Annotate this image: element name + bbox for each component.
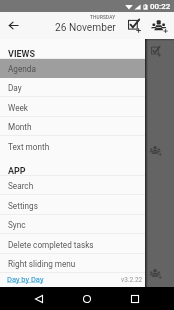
button[interactable]: New task [123,14,147,38]
button[interactable]: Search [0,176,145,195]
button[interactable]: Right sliding menu [0,254,145,273]
button[interactable]: Day by Day [7,275,44,284]
staticText: 26 November [55,22,116,34]
button[interactable]: Back [2,14,24,36]
staticText: Month [8,122,32,132]
staticText: 00:22 [150,2,171,11]
staticText: APP [8,166,26,177]
staticText: THURSDAY [90,15,116,21]
button[interactable]: Home [75,287,99,310]
staticText: Agenda [8,64,36,74]
staticText: Search [8,181,34,191]
button[interactable]: Add people [147,14,173,38]
button[interactable]: Back [27,287,51,310]
button[interactable]: Month [0,117,145,136]
button[interactable]: Sync [0,215,145,234]
button[interactable]: Week [0,98,145,117]
button[interactable]: Delete completed tasks [0,235,145,254]
button[interactable]: Recents [123,287,147,310]
staticText: VIEWS [8,49,35,60]
button[interactable]: Day [0,78,145,97]
staticText: Settings [8,201,38,211]
button[interactable]: Text month [0,137,145,156]
staticText: Week [8,103,28,113]
staticText: Right sliding menu [8,259,76,269]
button[interactable]: Settings [0,196,145,215]
staticText: v3.2.22 [121,276,143,284]
staticText: Day [8,83,22,93]
button[interactable]: Agenda [0,59,145,78]
staticText: Sync [8,220,26,230]
staticText: Delete completed tasks [8,240,94,250]
staticText: Text month [8,142,50,152]
